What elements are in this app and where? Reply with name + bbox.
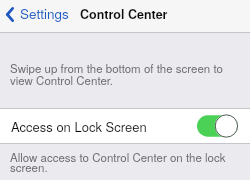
staticText: Settings: [20, 4, 69, 23]
staticText: screen.: [10, 159, 48, 175]
staticText: Access on Lock Screen: [11, 117, 147, 136]
staticText: view Control Center.: [10, 72, 114, 88]
button[interactable]: Access on Lock Screen toggle: [197, 114, 238, 138]
staticText: Swipe up from the bottom of the screen t…: [10, 60, 223, 76]
staticText: Control Center: [80, 5, 168, 23]
button[interactable]: Settings: [1, 0, 75, 29]
button[interactable]: Access on Lock Screen: [0, 108, 250, 143]
staticText: Allow access to Control Center on the lo…: [10, 149, 226, 165]
